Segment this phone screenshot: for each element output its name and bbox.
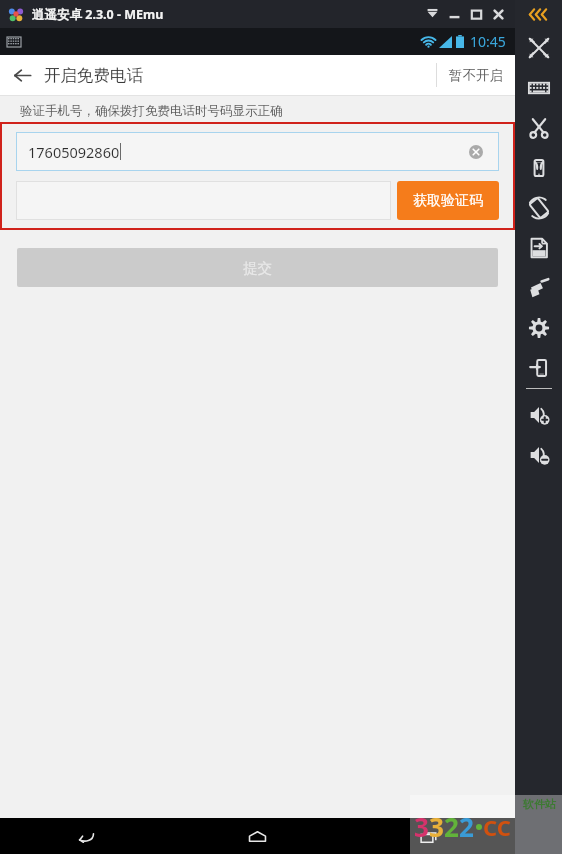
button[interactable]: Minimize (443, 1, 465, 27)
button[interactable]: 暂不开启 (437, 55, 515, 95)
staticText: 提交 (243, 259, 272, 277)
staticText: 3 (429, 809, 444, 844)
button[interactable]: Close (487, 1, 509, 27)
button[interactable]: Clear (465, 141, 487, 163)
staticText: 验证手机号，确保拨打免费电话时号码显示正确 (20, 103, 283, 119)
staticText: 17605092860 (28, 142, 120, 162)
button[interactable]: Rotate screen (515, 188, 562, 228)
button[interactable]: Volume up (515, 395, 562, 435)
button[interactable]: Volume down (515, 435, 562, 475)
button[interactable]: Recents (343, 818, 515, 854)
button[interactable]: Back (0, 818, 171, 854)
button[interactable]: Shake (515, 148, 562, 188)
button[interactable]: Fullscreen (515, 28, 562, 68)
button[interactable]: Maximize (465, 1, 487, 27)
button[interactable]: Home (171, 818, 343, 854)
staticText: 软件站 (523, 797, 556, 811)
button[interactable]: Collapse toolbar (421, 1, 443, 27)
button[interactable]: Install APK (515, 228, 562, 268)
staticText: 暂不开启 (449, 67, 503, 84)
staticText: 3 (414, 809, 429, 844)
button[interactable]: Share to phone (515, 348, 562, 388)
staticText: CC (483, 812, 511, 842)
button[interactable]: Collapse sidebar (515, 0, 562, 28)
button[interactable]: Keyboard (515, 68, 562, 108)
staticText: 获取验证码 (413, 192, 483, 210)
staticText: 10:45 (470, 32, 506, 51)
button[interactable]: Settings (515, 308, 562, 348)
button[interactable]: Clean (515, 268, 562, 308)
button[interactable]: 获取验证码 (397, 181, 499, 220)
button[interactable]: Screenshot crop (515, 108, 562, 148)
staticText: 逍遥安卓 2.3.0 - MEmu (32, 6, 164, 23)
button[interactable]: 17605092860 (16, 132, 499, 171)
staticText: 2 (444, 809, 459, 844)
staticText: 2 (459, 809, 474, 844)
button[interactable] (16, 181, 391, 220)
staticText: 开启免费电话 (44, 65, 143, 86)
button[interactable]: Back (0, 55, 44, 95)
